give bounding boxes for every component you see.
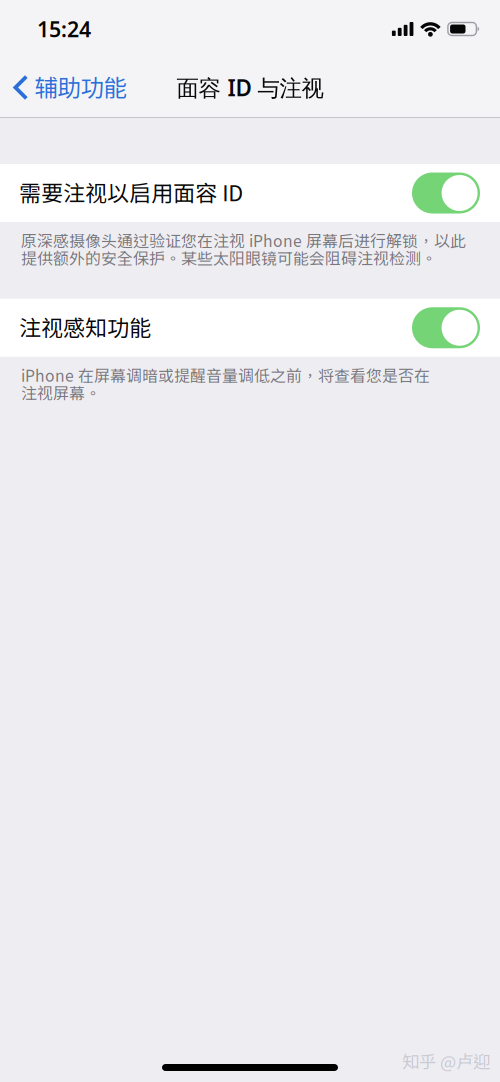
button[interactable]: 辅助功能 xyxy=(0,65,134,110)
button[interactable]: 注视感知功能 xyxy=(0,299,500,357)
staticText: iPhone 在屏幕调暗或提醒音量调低之前，将查看您是否在 xyxy=(21,366,430,385)
staticText: 原深感摄像头通过验证您在注视 iPhone 屏幕后进行解锁，以此 xyxy=(21,231,466,250)
staticText: 辅助功能 xyxy=(34,74,126,101)
button[interactable]: 需要注视以启用面容 ID xyxy=(0,164,500,222)
staticText: 面容 ID 与注视 xyxy=(176,72,323,103)
staticText: 注视屏幕。 xyxy=(21,384,101,402)
staticText: 注视感知功能 xyxy=(19,315,151,341)
staticText: 15:24 xyxy=(37,15,91,43)
staticText: 需要注视以启用面容 ID xyxy=(19,180,243,206)
staticText: 知乎 @卢迎 xyxy=(402,1051,490,1072)
staticText: 提供额外的安全保护。某些太阳眼镜可能会阻碍注视检测。 xyxy=(21,249,437,268)
